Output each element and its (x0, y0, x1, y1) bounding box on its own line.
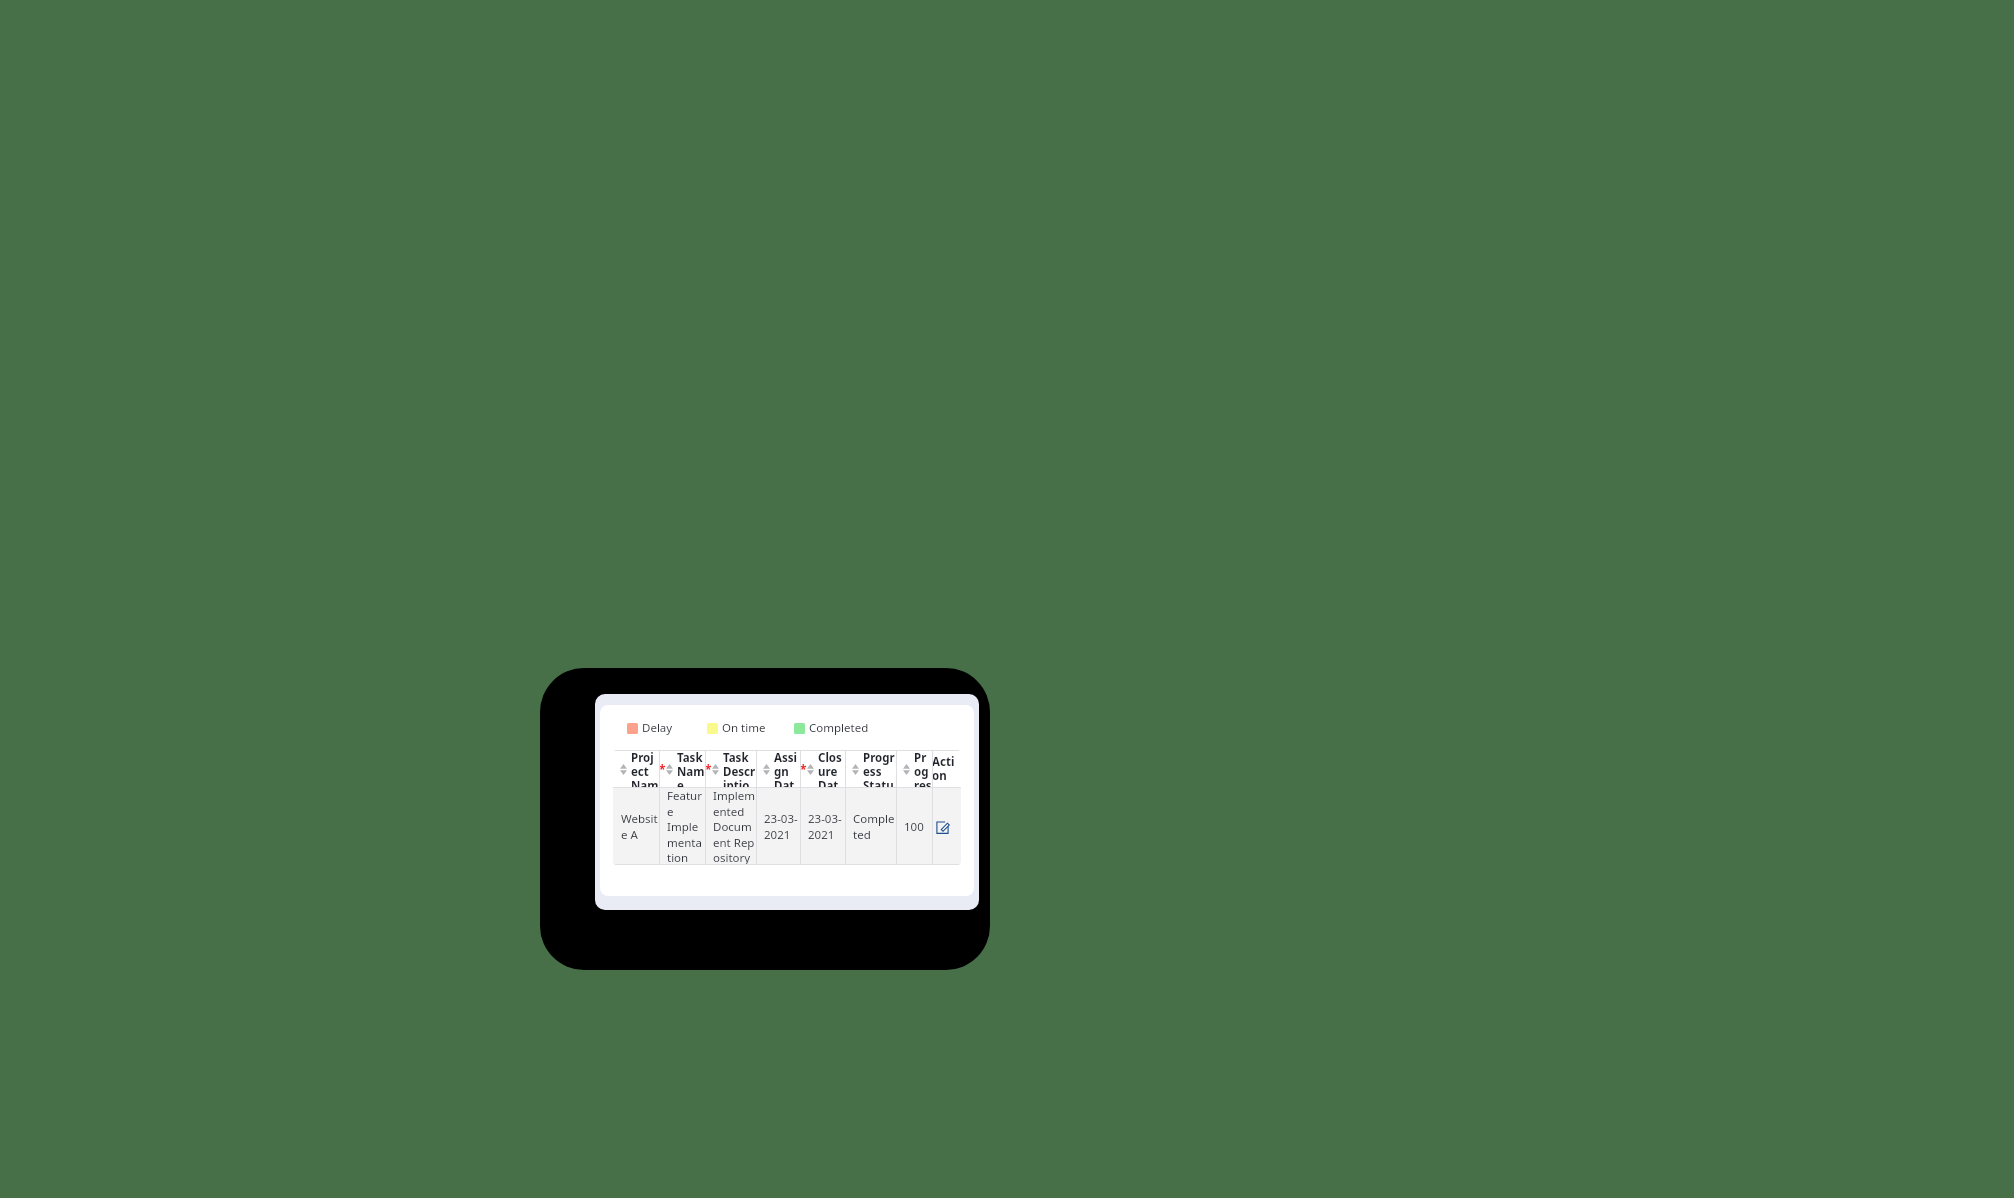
button[interactable]: Feature (659, 788, 705, 865)
staticText: Task Name (677, 750, 705, 788)
button[interactable]: Completed (845, 788, 896, 865)
button[interactable]: Task Name (659, 750, 705, 788)
button[interactable]: Website A (613, 788, 659, 865)
button[interactable]: Delay (627, 720, 673, 736)
staticText: Task Description (723, 750, 756, 788)
staticText: Delay (642, 720, 673, 736)
button[interactable]: Progress % (896, 750, 932, 788)
staticText: Implementation (667, 819, 705, 865)
staticText: 23-03-2021 (764, 811, 800, 842)
button[interactable]: On time (707, 720, 766, 736)
button[interactable]: 23-03-2021 (756, 788, 800, 865)
button[interactable]: Project Name (613, 750, 659, 788)
button[interactable]: Task Description (705, 750, 756, 788)
staticText: Closure Date (818, 750, 845, 788)
staticText: Website A (621, 811, 659, 842)
staticText: Document Repository (713, 819, 756, 865)
staticText: Progress Status (863, 750, 896, 788)
staticText: Assign Date (774, 750, 800, 788)
button[interactable]: Assign Date (756, 750, 800, 788)
staticText: 23-03-2021 (808, 811, 845, 842)
staticText: Implemented (713, 788, 756, 819)
staticText: Action (932, 754, 961, 784)
button[interactable]: Closure Date (800, 750, 845, 788)
button[interactable]: Edit task (932, 817, 952, 837)
staticText: On time (722, 720, 766, 736)
staticText: 100 (904, 819, 924, 835)
button[interactable]: Progress Status (845, 750, 896, 788)
button[interactable]: Implemented (705, 788, 756, 865)
staticText: Completed (809, 720, 869, 736)
button[interactable]: 100 (896, 788, 932, 865)
button[interactable]: Action (932, 750, 961, 788)
staticText: Progress % (914, 750, 932, 788)
button[interactable]: 23-03-2021 (800, 788, 845, 865)
button[interactable]: Completed (794, 720, 869, 736)
staticText: Completed (853, 811, 896, 842)
staticText: Project Name (631, 750, 659, 788)
staticText: Feature (667, 788, 705, 819)
